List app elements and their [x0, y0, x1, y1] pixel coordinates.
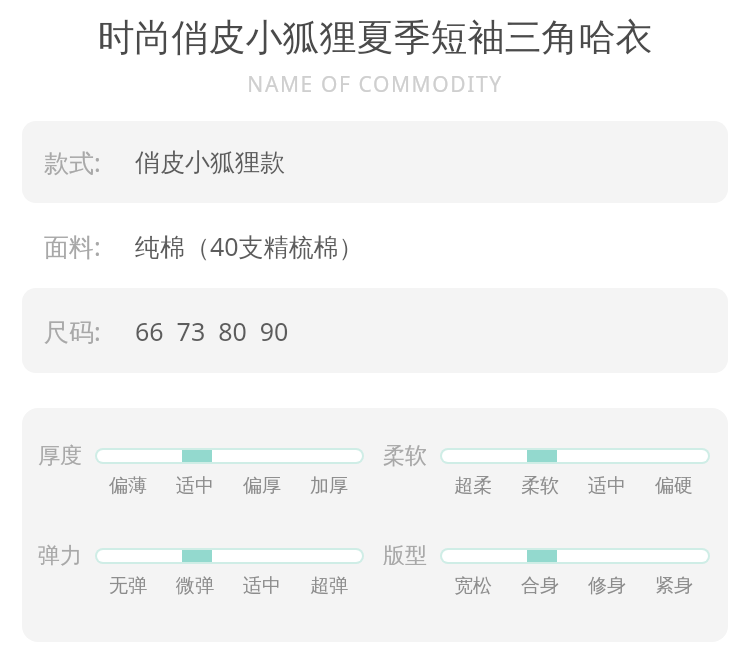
staticText: 适中 [588, 474, 626, 498]
staticText: 时尚俏皮小狐狸夏季短袖三角哈衣 [0, 14, 750, 61]
staticText: 超弹 [310, 574, 348, 598]
staticText: 适中 [243, 574, 281, 598]
staticText: 俏皮小狐狸款 [135, 147, 285, 178]
staticText: 版型 [383, 542, 427, 570]
staticText: 纯棉（40支精梳棉） [135, 229, 364, 263]
button[interactable]: 厚度 [38, 442, 390, 508]
button[interactable]: 款式: [22, 121, 728, 203]
staticText: 修身 [588, 574, 626, 598]
button[interactable]: 面料: [22, 205, 728, 287]
staticText: 款式: [44, 145, 101, 179]
staticText: 66 73 80 90 [135, 314, 289, 348]
staticText: 微弹 [176, 574, 214, 598]
button[interactable]: 尺码: [22, 288, 728, 373]
staticText: 适中 [176, 474, 214, 498]
staticText: 厚度 [38, 442, 82, 470]
button[interactable]: 版型 [383, 542, 728, 608]
staticText: 偏厚 [243, 474, 281, 498]
staticText: 紧身 [655, 574, 693, 598]
staticText: 加厚 [310, 474, 348, 498]
staticText: 弹力 [38, 542, 82, 570]
staticText: 面料: [44, 229, 101, 263]
button[interactable]: 柔软 [383, 442, 728, 508]
staticText: NAME OF COMMODITY [0, 70, 750, 99]
staticText: 柔软 [521, 474, 559, 498]
staticText: 偏薄 [109, 474, 147, 498]
staticText: 宽松 [454, 574, 492, 598]
staticText: 尺码: [44, 314, 101, 348]
staticText: 偏硬 [655, 474, 693, 498]
staticText: 无弹 [109, 574, 147, 598]
button[interactable]: 弹力 [38, 542, 390, 608]
staticText: 超柔 [454, 474, 492, 498]
staticText: 柔软 [383, 442, 427, 470]
staticText: 合身 [521, 574, 559, 598]
